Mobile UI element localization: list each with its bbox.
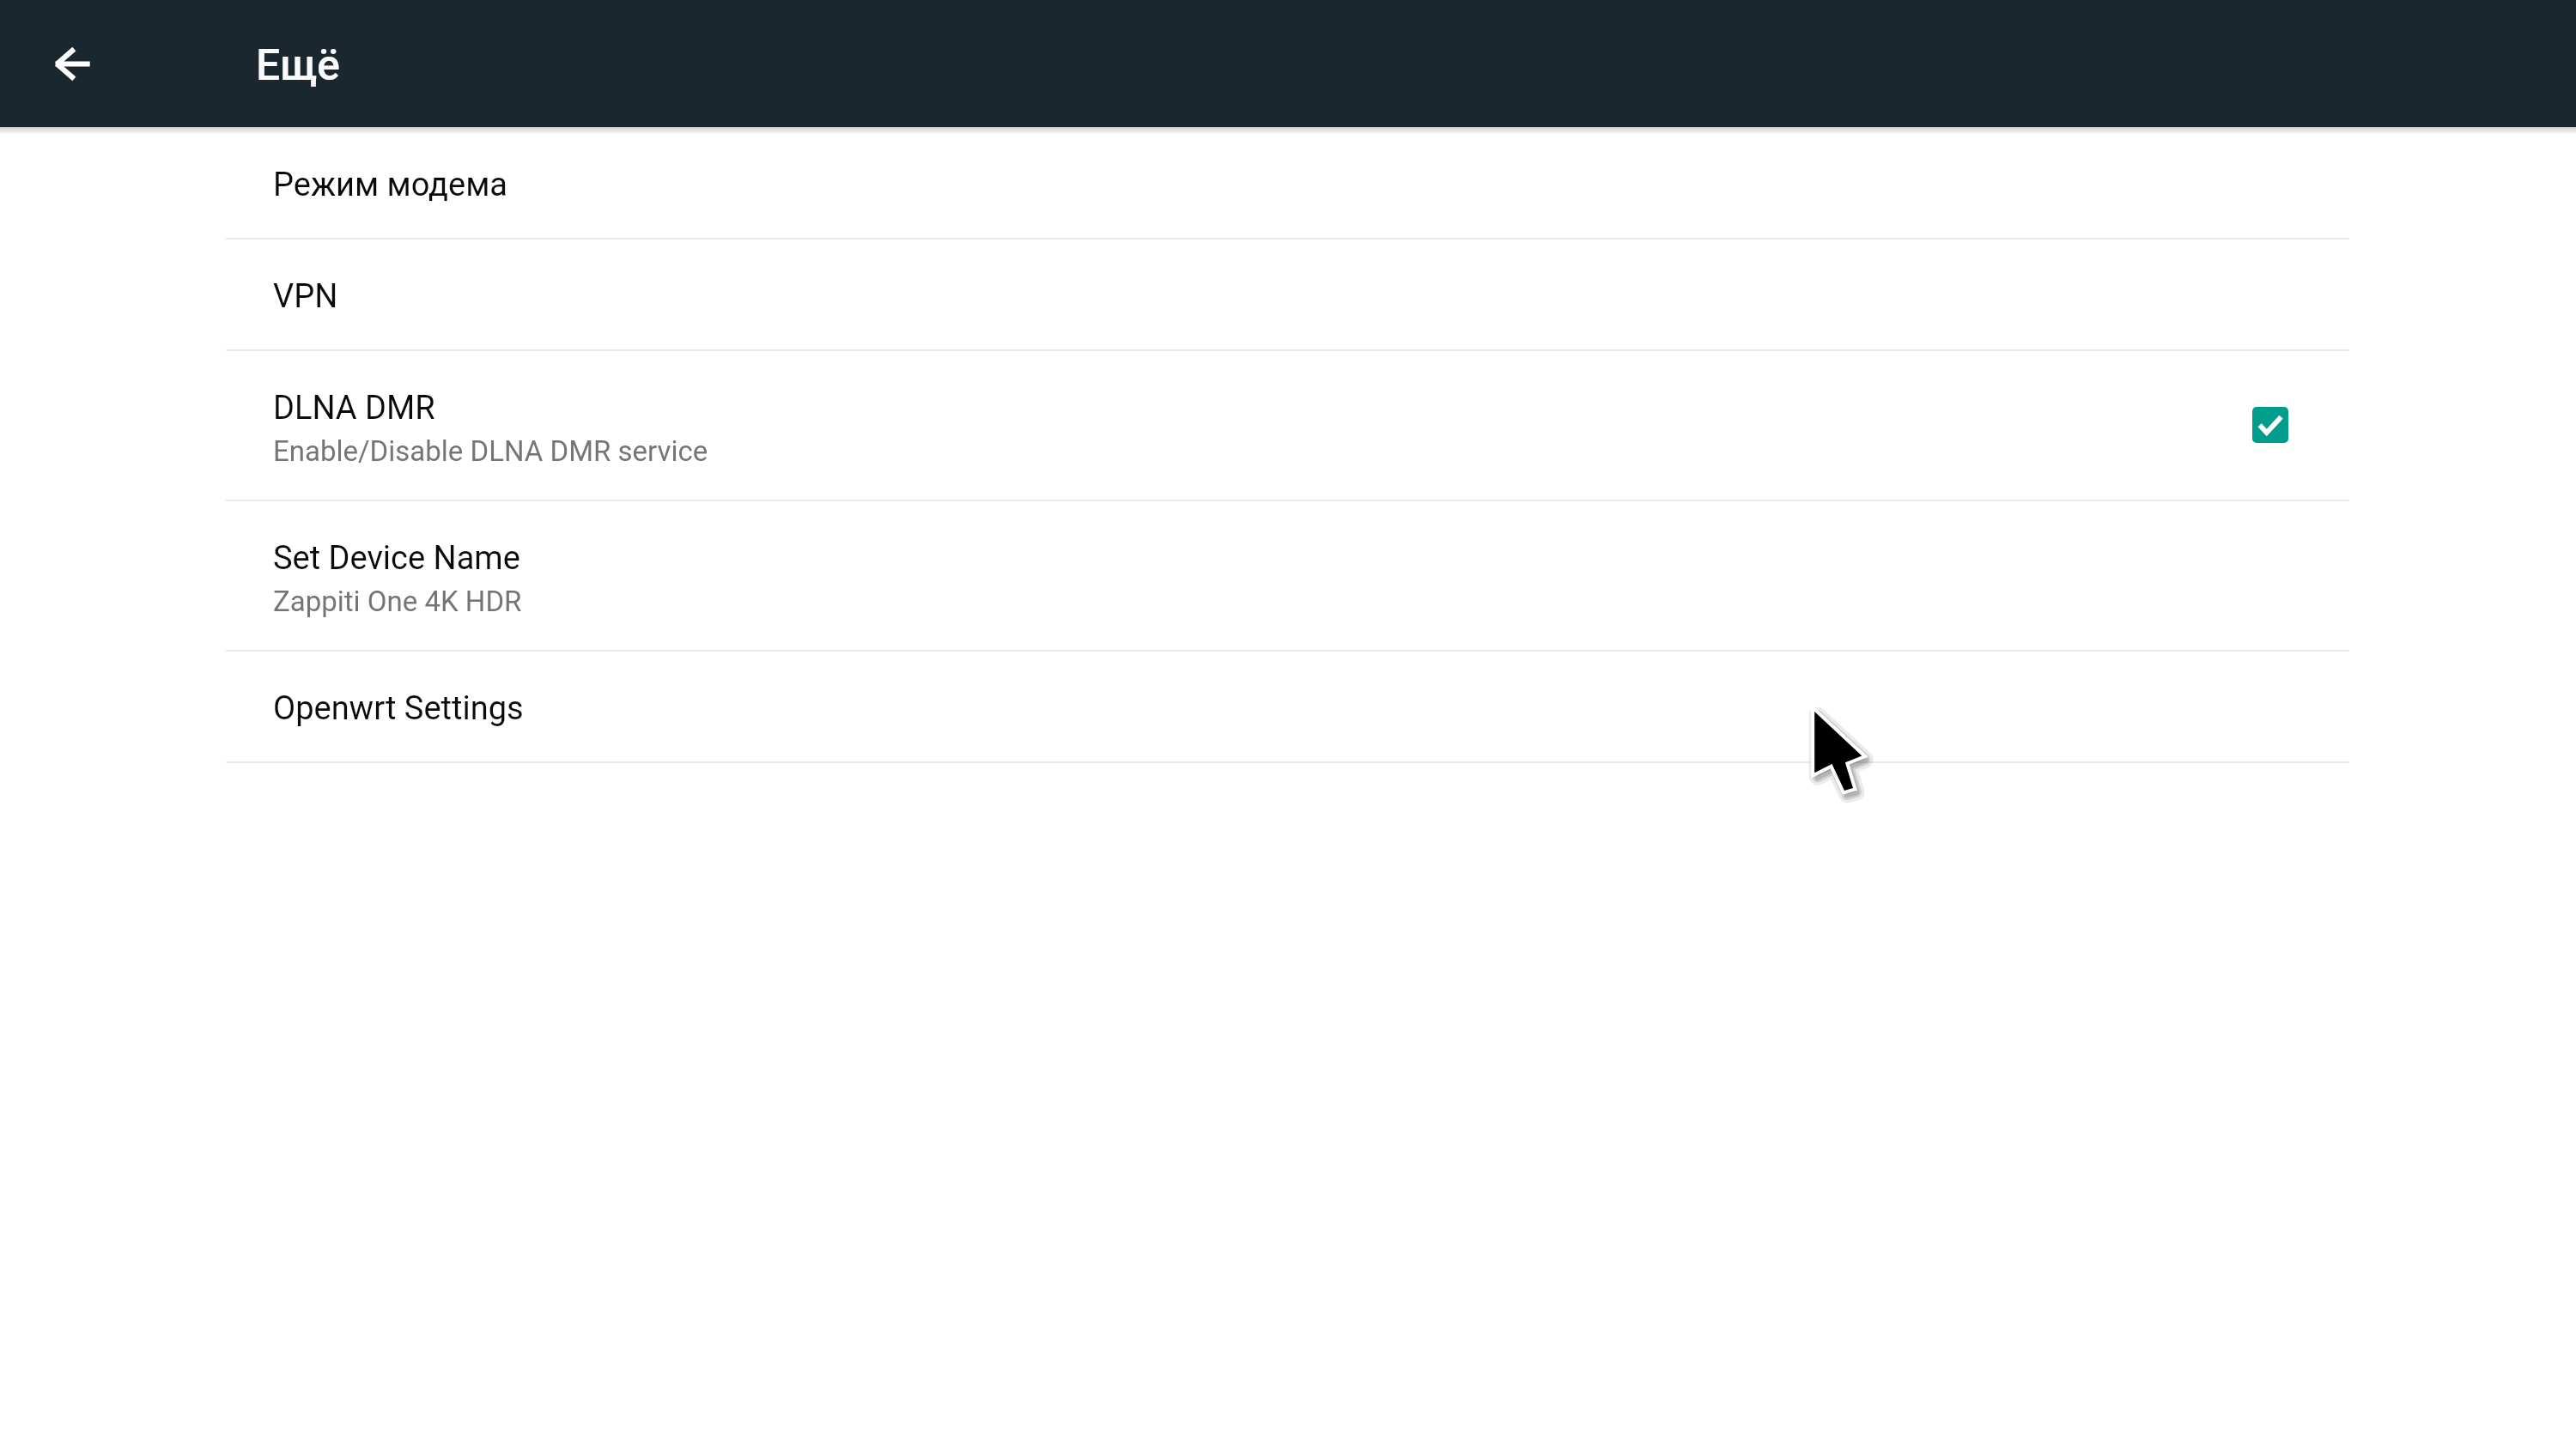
button[interactable]: DLNA DMR <box>226 349 2349 500</box>
staticText: VPN <box>273 277 338 316</box>
staticText: Ещё <box>256 40 340 91</box>
staticText: Zappiti One 4K HDR <box>273 585 522 618</box>
button[interactable]: Back <box>31 22 113 105</box>
staticText: Openwrt Settings <box>273 689 524 728</box>
button[interactable]: Режим модема <box>226 127 2349 238</box>
staticText: DLNA DMR <box>273 389 435 427</box>
button[interactable]: Set Device Name <box>226 500 2349 650</box>
button[interactable]: VPN <box>226 238 2349 349</box>
staticText: Set Device Name <box>273 539 520 578</box>
button[interactable]: Toggle DLNA DMR <box>2252 407 2288 443</box>
button[interactable]: Openwrt Settings <box>226 650 2349 761</box>
staticText: Режим модема <box>273 166 507 204</box>
staticText: Enable/Disable DLNA DMR service <box>273 434 708 468</box>
